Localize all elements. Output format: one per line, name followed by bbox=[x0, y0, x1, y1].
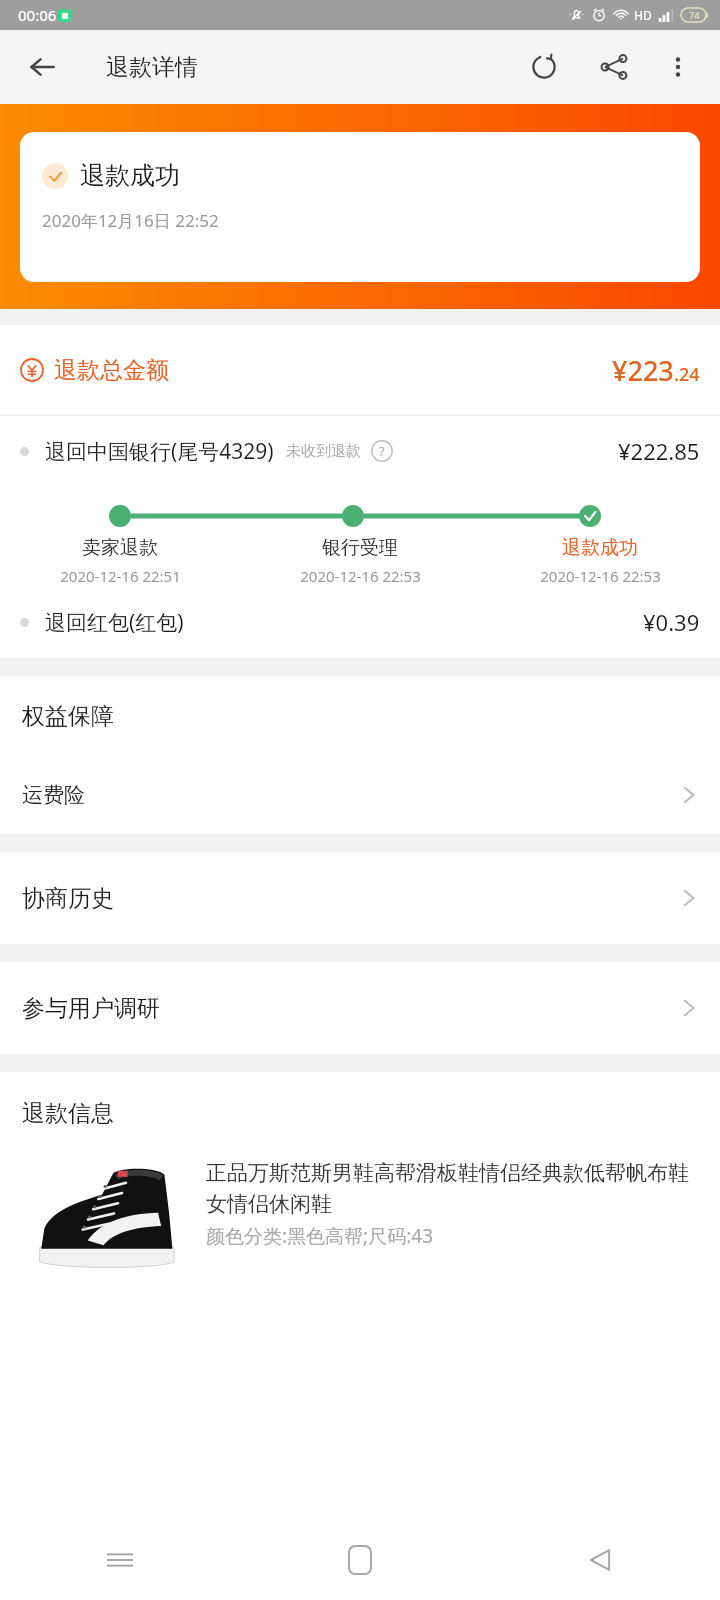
button[interactable]: 退回红包(红包) bbox=[0, 586, 720, 658]
staticText: 卖家退款 bbox=[82, 536, 158, 560]
staticText: 2020年12月16日 22:52 bbox=[42, 209, 219, 232]
staticText: 协商历史 bbox=[22, 884, 114, 913]
button[interactable]: Home bbox=[240, 1520, 480, 1600]
staticText: ? bbox=[379, 442, 385, 460]
staticText: 2020-12-16 22:53 bbox=[540, 566, 661, 586]
button[interactable]: 退款成功 bbox=[20, 132, 700, 282]
staticText: ¥222.85 bbox=[618, 436, 700, 466]
staticText: 74 bbox=[689, 9, 700, 21]
staticText: 正品万斯范斯男鞋高帮滑板鞋情侣经典款低帮帆布鞋女情侣休闲鞋 bbox=[206, 1160, 696, 1217]
staticText: HD bbox=[634, 7, 652, 23]
staticText: 未收到退款 bbox=[286, 442, 361, 461]
button[interactable]: 运费险 bbox=[0, 756, 720, 834]
button[interactable]: 参与用户调研 bbox=[0, 962, 720, 1054]
staticText: .24 bbox=[674, 362, 700, 387]
staticText: 运费险 bbox=[22, 782, 85, 808]
button[interactable]: 退回中国银行(尾号4329) bbox=[0, 416, 720, 486]
button[interactable]: Recent apps bbox=[0, 1520, 240, 1600]
button[interactable]: 正品万斯范斯男鞋高帮滑板鞋情侣经典款低帮帆布鞋女情侣休闲鞋 bbox=[0, 1154, 720, 1288]
staticText: 颜色分类:黑色高帮;尺码:43 bbox=[206, 1223, 434, 1249]
staticText: 退回中国银行(尾号4329) bbox=[45, 437, 274, 466]
staticText: 退款详情 bbox=[106, 53, 198, 82]
staticText: 退款成功 bbox=[80, 160, 180, 191]
staticText: 退款成功 bbox=[562, 536, 638, 560]
staticText: 00:06 bbox=[18, 5, 57, 25]
button[interactable]: 退款总金额 bbox=[0, 325, 720, 415]
staticText: 权益保障 bbox=[22, 702, 114, 731]
staticText: 银行受理 bbox=[322, 536, 398, 560]
staticText: 退款总金额 bbox=[54, 356, 169, 385]
staticText: 退回红包(红包) bbox=[45, 608, 184, 637]
staticText: ¥223 bbox=[612, 352, 674, 389]
button[interactable]: Refresh bbox=[518, 41, 570, 93]
button[interactable]: Share bbox=[588, 41, 640, 93]
staticText: 参与用户调研 bbox=[22, 994, 160, 1023]
staticText: 2020-12-16 22:51 bbox=[60, 566, 181, 586]
staticText: 退款信息 bbox=[22, 1099, 114, 1128]
button[interactable]: Back bbox=[480, 1520, 720, 1600]
button[interactable]: More options bbox=[654, 43, 702, 91]
staticText: 2020-12-16 22:53 bbox=[300, 566, 421, 586]
staticText: ¥0.39 bbox=[643, 607, 700, 637]
button[interactable]: Back bbox=[18, 43, 66, 91]
button[interactable]: Help bbox=[369, 438, 395, 464]
button[interactable]: 协商历史 bbox=[0, 852, 720, 944]
